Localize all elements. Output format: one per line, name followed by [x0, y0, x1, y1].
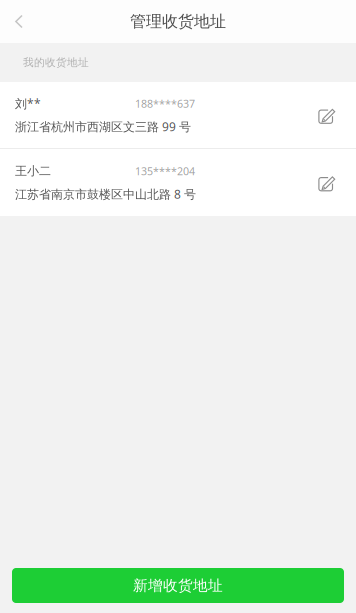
button[interactable]: 刘** [0, 82, 356, 148]
button[interactable]: 王小二 [0, 149, 356, 216]
button[interactable]: 新增收货地址 [12, 568, 344, 603]
staticText: 135****204 [135, 164, 195, 178]
staticText: 我的收货地址 [23, 56, 89, 69]
staticText: 浙江省杭州市西湖区文三路 99 号 [15, 118, 191, 134]
staticText: 王小二 [15, 164, 51, 178]
button[interactable]: 返回 [0, 0, 38, 43]
staticText: 管理收货地址 [130, 12, 226, 31]
staticText: 刘** [15, 95, 41, 111]
staticText: 江苏省南京市鼓楼区中山北路 8 号 [15, 186, 196, 202]
staticText: 新增收货地址 [133, 576, 223, 594]
staticText: 188****637 [135, 96, 195, 111]
